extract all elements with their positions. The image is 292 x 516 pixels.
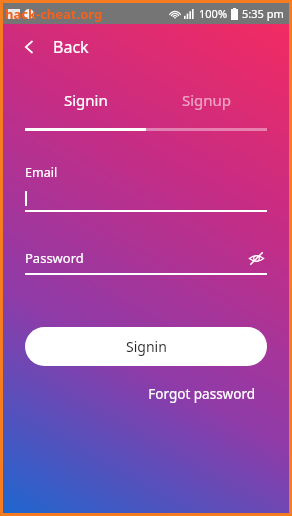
button[interactable]: Signup xyxy=(146,90,267,110)
staticText: Signin xyxy=(126,337,167,356)
staticText: Signup xyxy=(182,90,232,110)
button[interactable]: Show password xyxy=(245,248,267,268)
staticText: Email xyxy=(25,164,58,181)
button[interactable] xyxy=(25,190,267,206)
staticText: hack-cheat.org xyxy=(5,5,103,23)
staticText: Signin xyxy=(64,90,108,110)
button[interactable]: Signin xyxy=(25,327,267,366)
button[interactable]: Back xyxy=(3,24,289,70)
button[interactable]: Signin xyxy=(25,90,146,110)
staticText: Back xyxy=(53,36,89,58)
staticText: 5:35 pm xyxy=(242,6,284,21)
button[interactable]: Forgot password xyxy=(144,381,259,407)
staticText: Forgot password xyxy=(148,385,255,403)
staticText: Password xyxy=(25,249,245,267)
staticText: 100% xyxy=(199,6,228,21)
